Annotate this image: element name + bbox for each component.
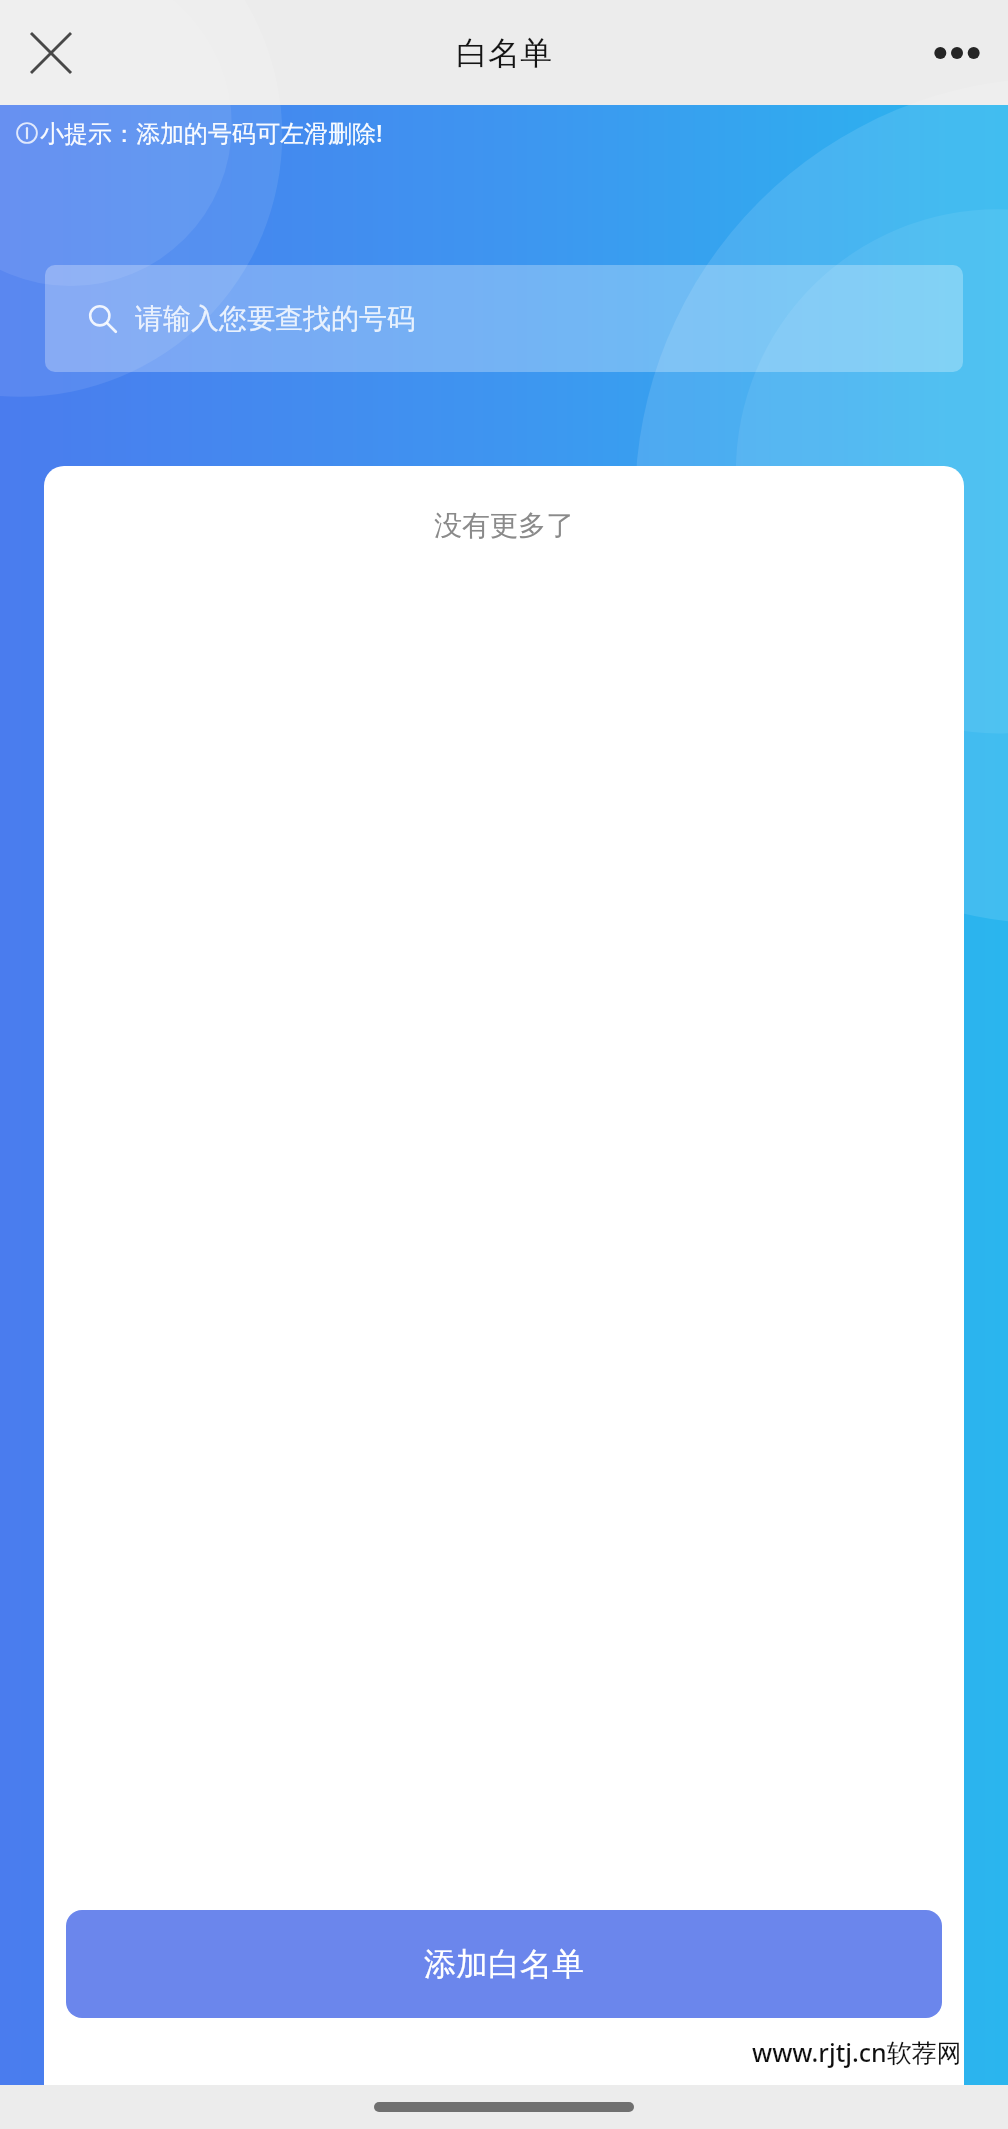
staticText: 请输入您要查找的号码 — [135, 301, 415, 336]
staticText: 添加白名单 — [424, 1944, 584, 1984]
staticText: www.rjtj.cn软荐网 — [752, 2035, 962, 2069]
staticText: 白名单 — [456, 33, 552, 73]
button[interactable]: 请输入您要查找的号码 — [45, 265, 963, 372]
staticText: 小提示：添加的号码可左滑删除! — [40, 116, 383, 149]
button[interactable]: More options — [916, 12, 998, 94]
staticText: 没有更多了 — [434, 508, 574, 543]
button[interactable]: Close — [10, 12, 92, 94]
button[interactable]: 添加白名单 — [66, 1910, 942, 2018]
